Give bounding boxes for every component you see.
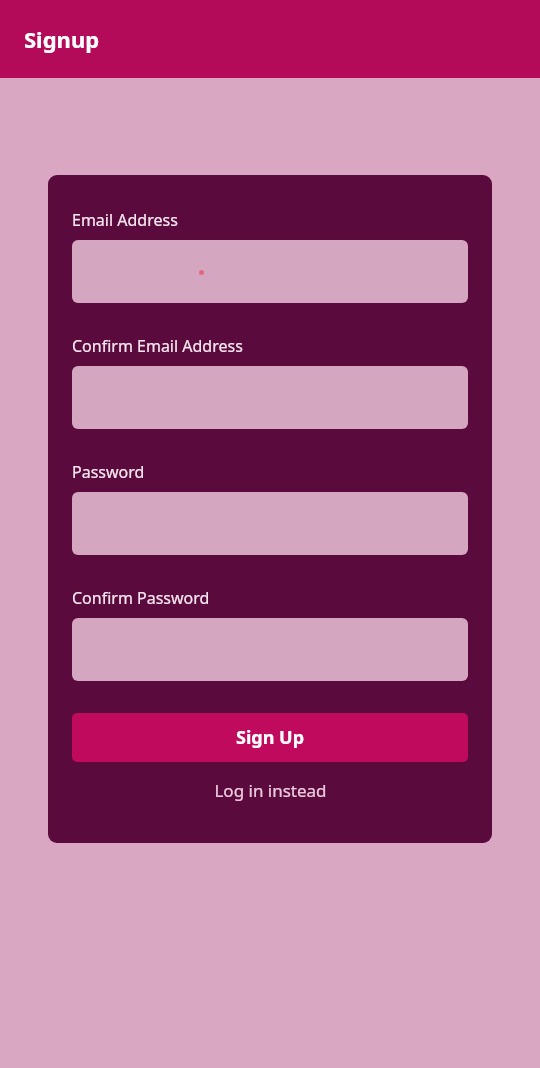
button[interactable]: Confirm Password: [72, 618, 468, 681]
button[interactable]: Password: [72, 492, 468, 555]
button[interactable]: Sign Up: [72, 713, 468, 762]
staticText: Log in instead: [214, 779, 327, 802]
button[interactable]: Log in instead: [72, 762, 468, 818]
staticText: Confirm Email Address: [72, 335, 243, 357]
staticText: Email Address: [72, 209, 178, 231]
staticText: Confirm Password: [72, 587, 210, 609]
staticText: Password: [72, 461, 145, 483]
staticText: Signup: [24, 24, 100, 54]
button[interactable]: Confirm Email Address: [72, 366, 468, 429]
staticText: Sign Up: [236, 725, 305, 750]
button[interactable]: Email Address: [72, 240, 468, 303]
